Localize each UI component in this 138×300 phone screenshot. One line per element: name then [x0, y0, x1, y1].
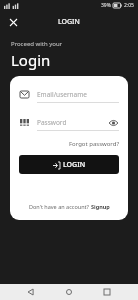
- staticText: 39%: [101, 2, 111, 9]
- staticText: Proceed with your: [11, 40, 63, 48]
- staticText: LOGIN: [58, 17, 80, 27]
- button[interactable]: Recents: [100, 285, 114, 299]
- button[interactable]: Forgot password?: [68, 140, 119, 148]
- staticText: Password: [37, 118, 67, 127]
- button[interactable]: Signup: [91, 203, 110, 210]
- staticText: Email/username: [37, 90, 87, 99]
- staticText: LOGIN: [63, 160, 86, 170]
- button[interactable]: LOGIN: [19, 155, 119, 174]
- button[interactable]: Show password: [108, 117, 119, 128]
- staticText: Don't have an account?: [29, 203, 89, 210]
- staticText: Login: [11, 50, 51, 70]
- button[interactable]: Back: [24, 285, 38, 299]
- button[interactable]: Close: [6, 15, 20, 29]
- staticText: Signup: [91, 203, 110, 210]
- staticText: 2:05: [124, 2, 134, 9]
- button[interactable]: Home: [62, 285, 76, 299]
